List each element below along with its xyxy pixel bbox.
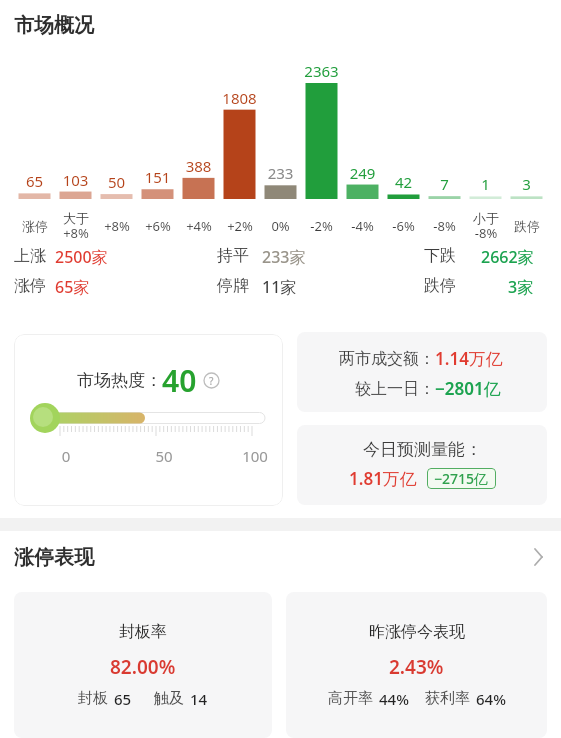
button[interactable]: 封板率 (14, 592, 272, 738)
staticText: 较上一日： (355, 379, 435, 399)
staticText: +8% (104, 217, 130, 235)
staticText: 封板 (78, 689, 108, 708)
staticText: 小于 -8% (473, 210, 499, 242)
staticText: 64% (476, 689, 506, 709)
staticText: 2662家 (481, 246, 534, 268)
staticText: 14 (190, 689, 208, 709)
staticText: 上涨 (14, 246, 46, 266)
staticText: 3家 (508, 276, 534, 298)
staticText: 市场热度： (77, 370, 162, 391)
staticText: 1808 (219, 88, 260, 108)
staticText: 100 (239, 446, 271, 466)
staticText: 1 (465, 174, 506, 194)
staticText: 跌停 (514, 218, 540, 234)
button[interactable]: 涨停表现 (0, 544, 561, 570)
staticText: 233 (260, 163, 301, 183)
staticText: 1.14万亿 (435, 347, 503, 370)
staticText: 市场概况 (14, 13, 94, 38)
staticText: 跌停 (424, 276, 456, 296)
staticText: 50 (152, 446, 176, 466)
staticText: 50 (96, 172, 137, 192)
staticText: 两市成交额： (339, 349, 435, 369)
staticText: 下跌 (424, 246, 456, 266)
staticText: −2715亿 (434, 469, 489, 488)
staticText: 388 (178, 156, 219, 176)
staticText: 249 (342, 163, 383, 183)
staticText: 151 (137, 167, 178, 187)
staticText: 0 (56, 446, 76, 466)
staticText: 7 (424, 174, 465, 194)
button[interactable]: 昨涨停今表现 (286, 592, 547, 738)
staticText: 0% (271, 217, 290, 235)
staticText: -8% (433, 217, 456, 235)
staticText: -4% (351, 217, 374, 235)
button[interactable]: 今日预测量能： (297, 425, 547, 505)
staticText: 42 (383, 172, 424, 192)
staticText: 233家 (262, 246, 306, 268)
staticText: 触及 (154, 689, 184, 708)
staticText: -6% (392, 217, 415, 235)
staticText: 11家 (262, 276, 297, 298)
staticText: 65家 (55, 276, 90, 298)
staticText: 82.00% (110, 654, 176, 680)
staticText: 65 (14, 171, 55, 191)
staticText: 3 (506, 174, 547, 194)
staticText: 持平 (217, 246, 249, 266)
staticText: 高开率 (328, 689, 373, 708)
staticText: 65 (114, 689, 132, 709)
staticText: 103 (55, 170, 96, 190)
staticText: 大于 +8% (63, 210, 89, 242)
button[interactable]: 市场热度： (14, 334, 283, 506)
staticText: +6% (145, 217, 171, 235)
staticText: 今日预测量能： (363, 439, 482, 460)
staticText: 涨停 (22, 218, 48, 234)
staticText: 涨停表现 (14, 545, 94, 570)
staticText: 涨停 (14, 276, 46, 296)
staticText: 停牌 (217, 276, 249, 296)
staticText: -2% (310, 217, 333, 235)
staticText: +4% (186, 217, 212, 235)
staticText: 2.43% (389, 654, 444, 680)
staticText: +2% (227, 217, 253, 235)
staticText: 2363 (301, 61, 342, 81)
staticText: 2500家 (55, 246, 108, 268)
staticText: −2801亿 (435, 377, 501, 400)
staticText: 40 (162, 360, 197, 401)
staticText: 1.81万亿 (349, 467, 417, 490)
staticText: 44% (379, 689, 409, 709)
staticText: 封板率 (119, 622, 167, 642)
button[interactable]: 两市成交额： (297, 332, 547, 412)
staticText: ? (209, 374, 214, 388)
staticText: 获利率 (425, 689, 470, 708)
staticText: 昨涨停今表现 (369, 622, 465, 642)
